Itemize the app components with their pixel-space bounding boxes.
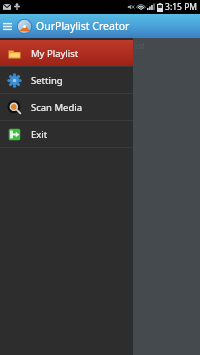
staticText: Setting <box>31 74 63 87</box>
button[interactable]: Scan Media <box>0 94 133 120</box>
staticText: OurPlaylist Creator <box>36 19 130 33</box>
staticText: Exit <box>31 128 48 141</box>
staticText: 3:15 PM <box>165 1 197 13</box>
staticText: list <box>134 40 145 51</box>
button[interactable]: Open navigation drawer <box>0 19 14 33</box>
button[interactable]: Exit <box>0 121 133 147</box>
button[interactable]: Setting <box>0 67 133 93</box>
staticText: Scan Media <box>31 101 83 114</box>
staticText: My Playlist <box>31 47 79 60</box>
button[interactable]: My Playlist <box>0 40 133 66</box>
